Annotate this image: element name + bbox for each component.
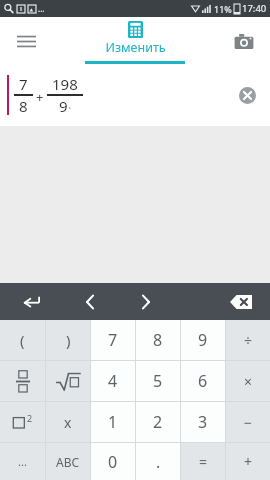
button[interactable]: . (136, 443, 180, 480)
staticText: ) (66, 330, 71, 350)
staticText: 7 (108, 329, 118, 351)
button[interactable]: 2 (136, 402, 180, 442)
button[interactable]: 7 (91, 320, 135, 360)
button[interactable]: Clear expression (233, 81, 261, 109)
button[interactable]: 8 (136, 320, 180, 360)
staticText: × (244, 372, 253, 391)
button[interactable]: 0 (91, 443, 135, 480)
staticText: 4 (108, 370, 118, 392)
staticText: ABC (56, 454, 80, 470)
staticText: = (199, 452, 208, 471)
staticText: 6 (198, 370, 208, 392)
button[interactable]: Square root (46, 361, 90, 401)
button[interactable]: ... (0, 443, 45, 480)
button[interactable]: x (46, 402, 90, 442)
button[interactable]: Cursor left (62, 283, 118, 320)
staticText: 5 (153, 370, 163, 392)
button[interactable]: Menu (9, 24, 43, 58)
staticText: · (68, 100, 72, 116)
button[interactable]: New line (0, 283, 62, 320)
staticText: 198 (52, 74, 78, 94)
button[interactable]: 5 (136, 361, 180, 401)
staticText: 2 (27, 412, 33, 424)
button[interactable]: Изменить (85, 17, 185, 64)
staticText: + (36, 88, 44, 106)
button[interactable]: Camera (229, 26, 259, 56)
staticText: x (64, 413, 72, 432)
staticText: 8 (153, 329, 163, 351)
staticText: + (244, 452, 253, 471)
button[interactable]: = (181, 443, 225, 480)
button[interactable]: ÷ (226, 320, 270, 360)
button[interactable]: 1 (91, 402, 135, 442)
staticText: 8 (19, 96, 28, 116)
button[interactable]: − (226, 402, 270, 442)
button[interactable]: Backspace (212, 283, 270, 320)
button[interactable]: ) (46, 320, 90, 360)
button[interactable]: Fraction (0, 361, 45, 401)
staticText: ... (38, 3, 45, 14)
staticText: − (244, 413, 253, 432)
staticText: 2 (153, 411, 163, 433)
staticText: 11% (214, 3, 232, 15)
staticText: 1 (108, 411, 118, 433)
staticText: 17:40 (242, 2, 267, 15)
button[interactable]: Cursor right (118, 283, 174, 320)
staticText: Изменить (105, 39, 166, 56)
button[interactable]: 4 (91, 361, 135, 401)
staticText: ( (20, 330, 25, 350)
staticText: ... (18, 454, 27, 469)
staticText: . (156, 451, 161, 473)
button[interactable]: Square (0, 402, 45, 442)
staticText: 0 (108, 451, 118, 473)
button[interactable]: 3 (181, 402, 225, 442)
staticText: 3 (198, 411, 208, 433)
button[interactable]: ( (0, 320, 45, 360)
button[interactable]: 6 (181, 361, 225, 401)
staticText: 9 (198, 329, 208, 351)
button[interactable]: ABC (46, 443, 90, 480)
staticText: ÷ (244, 331, 253, 350)
button[interactable]: × (226, 361, 270, 401)
staticText: 7 (19, 74, 28, 94)
button[interactable]: + (226, 443, 270, 480)
button[interactable]: 9 (181, 320, 225, 360)
staticText: 9 (59, 96, 68, 116)
